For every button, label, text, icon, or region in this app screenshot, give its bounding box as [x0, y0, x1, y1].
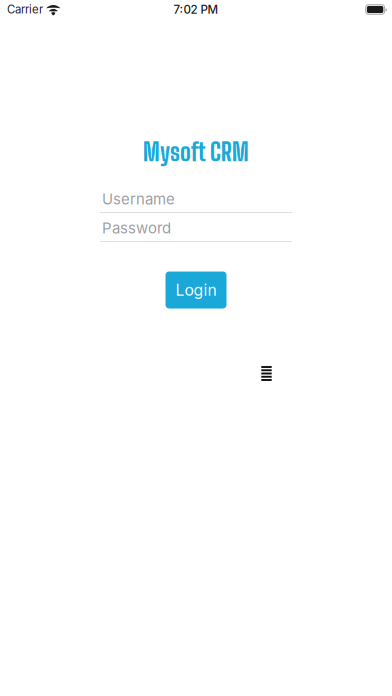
- staticText: Mysoft CRM: [143, 138, 249, 166]
- staticText: Carrier: [7, 3, 43, 16]
- staticText: 7:02 PM: [173, 2, 218, 16]
- button[interactable]: Login: [165, 271, 226, 308]
- staticText: Login: [175, 280, 216, 299]
- button[interactable]: Menu: [257, 362, 276, 385]
- staticText: Password: [102, 219, 171, 237]
- staticText: Username: [102, 190, 175, 208]
